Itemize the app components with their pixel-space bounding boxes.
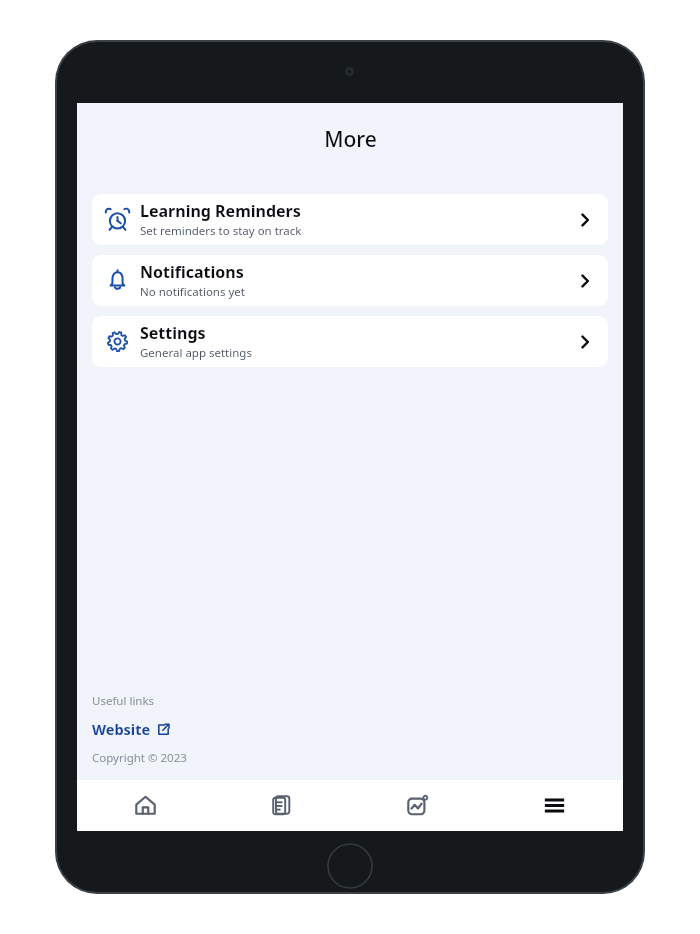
staticText: No notifications yet	[140, 284, 245, 300]
button[interactable]: Progress	[349, 780, 486, 831]
button[interactable]: Website	[92, 718, 176, 740]
staticText: More	[324, 125, 377, 154]
staticText: Copyright © 2023	[92, 750, 187, 766]
staticText: Settings	[140, 322, 206, 344]
button[interactable]: Documents	[213, 780, 349, 831]
button[interactable]: Menu	[486, 780, 623, 831]
button[interactable]: Notifications	[92, 255, 608, 306]
staticText: Notifications	[140, 261, 244, 283]
staticText: General app settings	[140, 345, 252, 361]
staticText: Useful links	[92, 693, 155, 709]
button[interactable]: Learning Reminders	[92, 194, 608, 245]
staticText: Set reminders to stay on track	[140, 223, 302, 239]
button[interactable]: Settings	[92, 316, 608, 367]
staticText: Website	[92, 719, 151, 739]
button[interactable]: Home	[77, 780, 213, 831]
staticText: Learning Reminders	[140, 200, 301, 222]
